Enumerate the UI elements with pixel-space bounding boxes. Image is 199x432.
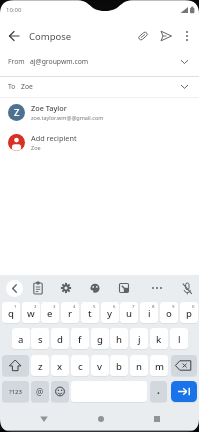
staticText: m	[155, 360, 164, 373]
button[interactable]	[150, 412, 164, 426]
button[interactable]: a	[12, 328, 30, 349]
button[interactable]	[116, 280, 132, 296]
staticText: l	[178, 333, 181, 346]
staticText: s	[38, 333, 43, 346]
staticText: x	[57, 360, 63, 373]
staticText: From	[8, 57, 25, 66]
button[interactable]: y	[101, 302, 119, 323]
staticText: o	[166, 307, 172, 320]
button[interactable]: j	[130, 328, 148, 349]
staticText: h	[116, 333, 122, 346]
button[interactable]	[149, 280, 165, 296]
staticText: y	[107, 307, 113, 320]
button[interactable]: z	[31, 355, 49, 376]
staticText: aj@groupwm.com	[30, 57, 89, 66]
button[interactable]	[51, 381, 69, 402]
button[interactable]: From	[0, 52, 199, 76]
button[interactable]: i	[140, 302, 158, 323]
button[interactable]	[179, 28, 195, 44]
button[interactable]: r	[61, 302, 79, 323]
button[interactable]	[135, 28, 151, 44]
staticText: r	[68, 307, 73, 320]
staticText: q	[8, 307, 14, 320]
button[interactable]: o	[160, 302, 178, 323]
staticText: @	[36, 386, 44, 397]
button[interactable]	[37, 412, 51, 426]
button[interactable]	[2, 355, 29, 376]
staticText: Zoe	[31, 144, 41, 151]
button[interactable]: To	[0, 77, 199, 97]
button[interactable]: p	[180, 302, 198, 323]
staticText: .	[157, 383, 160, 397]
staticText: b	[116, 360, 122, 373]
staticText: Add recipient	[31, 133, 77, 143]
staticText: 10:00	[6, 6, 22, 14]
staticText: w	[27, 307, 35, 320]
staticText: 3	[53, 303, 56, 309]
staticText: Zoe	[21, 82, 33, 91]
staticText: k	[156, 333, 162, 346]
staticText: a	[18, 333, 24, 346]
staticText: p	[186, 307, 192, 320]
staticText: 5	[93, 303, 96, 309]
staticText: 9	[172, 303, 175, 309]
button[interactable]	[6, 280, 23, 297]
button[interactable]	[94, 412, 108, 426]
button[interactable]: Z	[0, 101, 199, 131]
button[interactable]	[30, 280, 46, 296]
button[interactable]: d	[51, 328, 69, 349]
staticText: 4	[73, 303, 76, 309]
button[interactable]: g	[91, 328, 109, 349]
button[interactable]: c	[71, 355, 89, 376]
button[interactable]: l	[170, 328, 188, 349]
staticText: t	[88, 307, 92, 320]
button[interactable]: .	[150, 381, 167, 402]
button[interactable]: m	[150, 355, 168, 376]
staticText: To	[8, 82, 16, 91]
staticText: 8	[152, 303, 155, 309]
staticText: f	[78, 333, 82, 346]
button[interactable]: b	[110, 355, 128, 376]
button[interactable]	[58, 280, 74, 296]
staticText: d	[57, 333, 63, 346]
button[interactable]: f	[71, 328, 89, 349]
button[interactable]: t	[81, 302, 99, 323]
staticText: n	[136, 360, 142, 373]
button[interactable]	[87, 280, 103, 296]
staticText: zoe.taylor.wm@@gmail.com	[31, 114, 104, 121]
button[interactable]: ?123	[2, 381, 29, 402]
staticText: Compose	[29, 30, 72, 43]
staticText: 7	[132, 303, 135, 309]
staticText: g	[97, 333, 103, 346]
button[interactable]: Add recipient	[0, 131, 199, 161]
staticText: u	[126, 307, 132, 320]
button[interactable]	[171, 355, 197, 376]
button[interactable]: h	[110, 328, 128, 349]
staticText: 1	[14, 303, 17, 309]
button[interactable]: e	[41, 302, 59, 323]
staticText: Zoe Taylor	[31, 103, 67, 113]
button[interactable]: u	[120, 302, 138, 323]
staticText: ?123	[9, 388, 22, 396]
staticText: j	[138, 333, 141, 346]
staticText: 0	[192, 303, 195, 309]
staticText: i	[148, 307, 151, 320]
staticText: 2	[34, 303, 37, 309]
button[interactable]	[6, 28, 22, 44]
button[interactable]	[158, 28, 174, 44]
staticText: v	[97, 360, 103, 373]
button[interactable]: k	[150, 328, 168, 349]
staticText: 6	[113, 303, 116, 309]
button[interactable]: n	[130, 355, 148, 376]
button[interactable]: q	[2, 302, 20, 323]
button[interactable]: w	[22, 302, 40, 323]
button[interactable]: v	[91, 355, 109, 376]
button[interactable]	[179, 280, 195, 296]
button[interactable]: x	[51, 355, 69, 376]
button[interactable]	[171, 381, 197, 402]
button[interactable]: s	[31, 328, 49, 349]
staticText: c	[78, 360, 83, 373]
button[interactable]: @	[31, 381, 49, 402]
staticText: z	[38, 360, 43, 373]
